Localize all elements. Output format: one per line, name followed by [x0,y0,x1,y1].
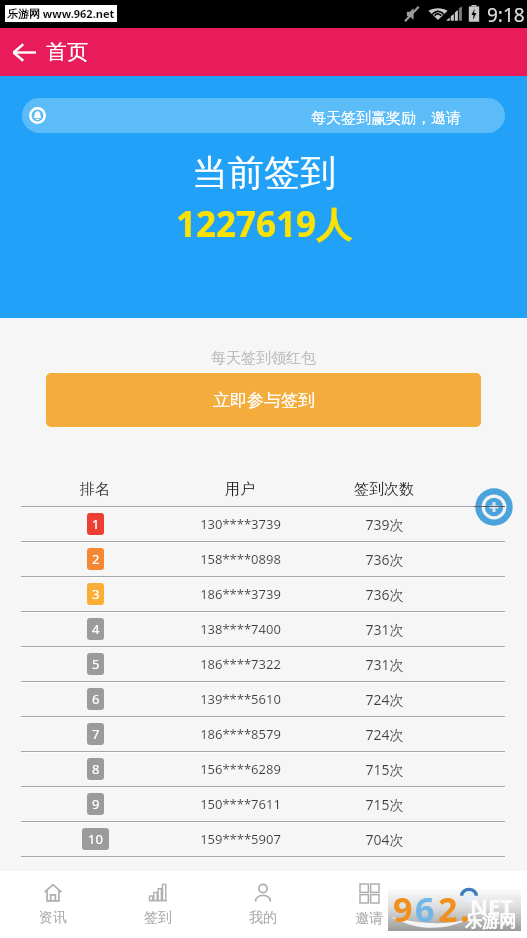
staticText: NET [470,891,513,921]
staticText: 乐游网 www.962.net [7,6,115,21]
staticText: 150****7611 [200,795,281,813]
staticText: 排名 [80,480,110,499]
staticText: 715次 [365,760,404,779]
button[interactable]: 10 [0,822,527,856]
staticText: 1 [92,515,100,533]
staticText: 2 [92,550,100,568]
staticText: 用户 [225,480,255,499]
staticText: 乐游网 [465,911,516,932]
staticText: 186****3739 [200,585,281,603]
staticText: 724次 [365,725,404,744]
button[interactable]: 6 [0,682,527,716]
staticText: . [460,886,470,928]
staticText: 736次 [365,550,404,569]
staticText: 739次 [365,515,404,534]
staticText: 邀请 [355,910,383,928]
button[interactable]: 签到 [105,871,210,938]
staticText: 159****5907 [200,830,281,848]
button[interactable]: 我的 [210,871,316,938]
staticText: 首页 [46,39,88,65]
button[interactable]: 每天签到赢奖励，邀请 [22,98,505,133]
staticText: 当前签到 [192,150,336,195]
button[interactable]: Add [474,487,514,527]
staticText: 704次 [365,830,404,849]
button[interactable]: 资讯 [0,871,105,938]
staticText: 6 [415,886,435,928]
staticText: 138****7400 [200,620,281,638]
staticText: 每天签到领红包 [211,349,316,368]
staticText: 5 [92,655,100,673]
staticText: 8 [92,760,100,778]
staticText: 3 [92,585,100,603]
staticText: 186****7322 [200,655,281,673]
staticText: 715次 [365,795,404,814]
button[interactable]: 1 [0,507,527,541]
staticText: 731次 [365,620,404,639]
staticText: 签到 [144,909,172,927]
button[interactable]: 5 [0,647,527,681]
button[interactable]: Back [4,32,44,72]
button[interactable]: 7 [0,717,527,751]
button[interactable]: 3 [0,577,527,611]
button[interactable]: 邀请 [316,871,422,938]
staticText: 158****0898 [200,550,281,568]
staticText: 我的 [249,909,277,927]
staticText: 724次 [365,690,404,709]
staticText: 9 [393,886,413,928]
staticText: 1227619人 [176,200,352,248]
staticText: 每天签到赢奖励，邀请 [311,109,461,128]
button[interactable]: 9 [0,787,527,821]
button[interactable]: 立即参与签到 [46,373,481,427]
button[interactable]: 2 [0,542,527,576]
staticText: 10 [88,830,103,848]
staticText: 736次 [365,585,404,604]
staticText: 6 [92,690,100,708]
staticText: 立即参与签到 [213,390,315,411]
staticText: 签到次数 [354,480,414,499]
staticText: 4 [92,620,100,638]
staticText: 139****5610 [200,690,281,708]
button[interactable]: 8 [0,752,527,786]
staticText: 186****8579 [200,725,281,743]
staticText: 9 [92,795,100,813]
staticText: 7 [92,725,100,743]
staticText: 资讯 [39,909,67,927]
staticText: 9:18 [487,2,525,28]
button[interactable]: 4 [0,612,527,646]
staticText: 731次 [365,655,404,674]
staticText: 156****6289 [200,760,281,778]
staticText: 130****3739 [200,515,281,533]
staticText: 2 [438,886,458,928]
